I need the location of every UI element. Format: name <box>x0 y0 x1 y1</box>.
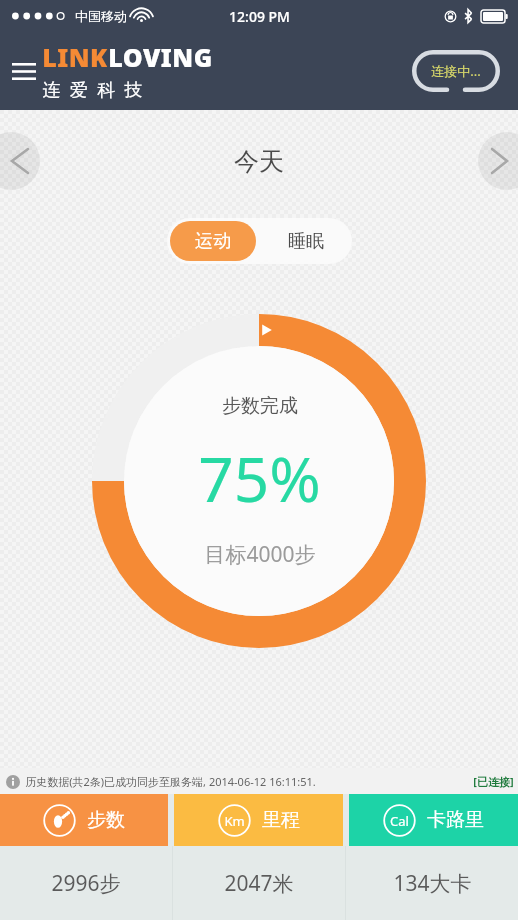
staticText: 卡路里 <box>427 808 484 832</box>
staticText: 2047米 <box>224 869 294 898</box>
button[interactable]: Previous day <box>0 132 40 190</box>
button[interactable]: Km <box>174 794 343 846</box>
staticText: [已连接] <box>473 774 514 789</box>
staticText: Cal <box>390 812 409 830</box>
button[interactable]: 连接中... <box>412 50 500 92</box>
staticText: 12:09 PM <box>229 7 290 26</box>
staticText: 历史数据(共2条)已成功同步至服务端, 2014-06-12 16:11:51. <box>25 774 316 789</box>
staticText: 目标4000步 <box>204 540 316 569</box>
button[interactable]: Next day <box>478 132 518 190</box>
button[interactable]: Cal <box>349 794 518 846</box>
staticText: 中国移动 <box>75 8 127 24</box>
staticText: 今天 <box>234 146 284 177</box>
staticText: LINK <box>42 40 108 74</box>
staticText: 2996步 <box>51 869 121 898</box>
staticText: 睡眠 <box>288 230 324 253</box>
staticText: 连 爱 科 技 <box>42 77 143 102</box>
staticText: 75% <box>198 436 321 520</box>
button[interactable]: 134大卡 <box>346 846 518 920</box>
staticText: 运动 <box>195 230 231 253</box>
staticText: LOVING <box>108 40 213 74</box>
button[interactable]: Menu <box>4 51 44 91</box>
button[interactable]: 2996步 <box>0 846 172 920</box>
staticText: 连接中... <box>431 62 481 80</box>
staticText: 步数 <box>87 808 125 832</box>
staticText: Km <box>224 812 245 830</box>
button[interactable]: 睡眠 <box>259 218 352 264</box>
staticText: 步数完成 <box>222 394 298 418</box>
staticText: 134大卡 <box>393 869 472 898</box>
button[interactable]: 2047米 <box>173 846 345 920</box>
staticText: 里程 <box>262 808 300 832</box>
button[interactable]: 运动 <box>170 221 256 261</box>
button[interactable]: 步数 <box>0 794 168 846</box>
